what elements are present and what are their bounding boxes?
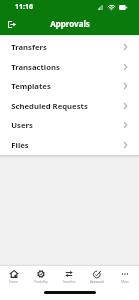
button[interactable]: Home xyxy=(0,270,27,284)
staticText: Transactions xyxy=(11,62,60,72)
staticText: Templates xyxy=(11,81,51,91)
button[interactable]: More xyxy=(111,270,139,284)
staticText: Home xyxy=(9,280,18,284)
button[interactable]: ProduPay xyxy=(27,270,55,284)
button[interactable]: Users xyxy=(0,115,139,135)
staticText: ProduPay xyxy=(34,280,48,284)
button[interactable]: Templates xyxy=(0,76,139,96)
staticText: More xyxy=(121,280,129,284)
staticText: Transfers xyxy=(62,280,76,284)
button[interactable]: Files xyxy=(0,135,139,155)
button[interactable]: Transfers xyxy=(55,270,83,284)
staticText: 11:16 xyxy=(15,2,33,12)
staticText: Transfers xyxy=(11,42,47,52)
button[interactable]: Approvals xyxy=(83,270,111,284)
staticText: Files xyxy=(11,140,29,150)
staticText: Approvals xyxy=(90,280,104,284)
staticText: Scheduled Requests xyxy=(11,101,88,111)
button[interactable]: Transactions xyxy=(0,57,139,77)
button[interactable]: Log out xyxy=(2,15,21,34)
staticText: Approvals xyxy=(50,18,90,29)
staticText: Users xyxy=(11,120,33,130)
button[interactable]: Scheduled Requests xyxy=(0,96,139,116)
button[interactable]: Transfers xyxy=(0,37,139,57)
